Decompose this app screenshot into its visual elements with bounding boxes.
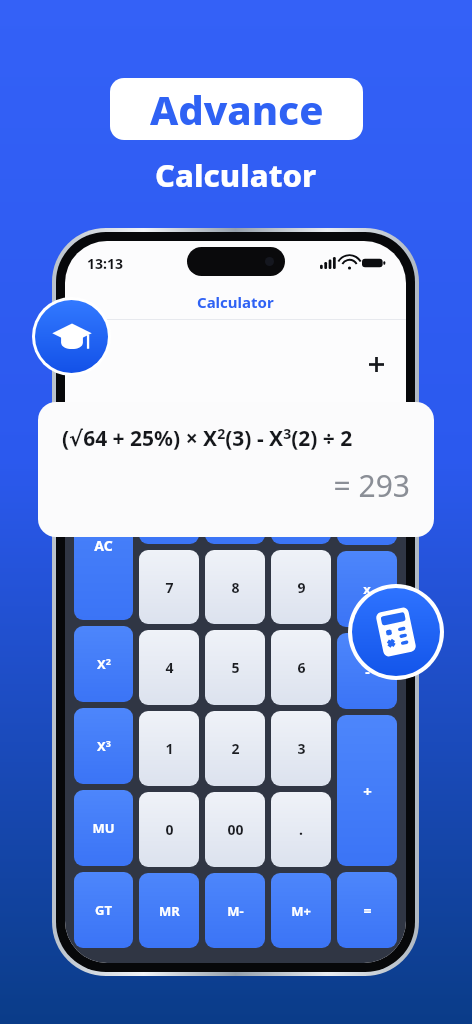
button[interactable]: + xyxy=(337,715,397,866)
button[interactable]: ÷ xyxy=(337,470,397,545)
button[interactable]: . xyxy=(271,792,331,867)
staticText: 2 xyxy=(231,739,240,758)
staticText: Check xyxy=(96,426,130,441)
button[interactable]: MR xyxy=(139,873,199,948)
staticText: 0→00 xyxy=(271,443,294,455)
staticText: . xyxy=(299,820,303,839)
staticText: (√64 + 25%) × X2(3) - X3(2) ÷ 2 xyxy=(62,424,410,453)
button[interactable]: 1 xyxy=(139,711,199,786)
staticText: = xyxy=(363,901,372,920)
staticText: 8 xyxy=(231,578,240,597)
staticText: 13:13 xyxy=(87,254,123,273)
button[interactable]: Education xyxy=(35,300,108,373)
staticText: = 293 xyxy=(62,465,410,506)
staticText: 00 xyxy=(227,820,244,839)
button[interactable]: 2 xyxy=(205,711,265,786)
staticText: 5 xyxy=(231,658,240,677)
button[interactable]: x xyxy=(337,551,397,627)
staticText: Advance xyxy=(150,82,324,136)
staticText: 3 xyxy=(297,739,306,758)
button[interactable]: MU xyxy=(74,790,133,866)
button[interactable]: Square root xyxy=(205,470,265,544)
staticText: + xyxy=(363,781,372,801)
staticText: Calculator xyxy=(197,292,274,312)
button[interactable]: Auto Repeat xyxy=(321,416,397,464)
staticText: 0 xyxy=(165,820,174,839)
staticText: M+ xyxy=(291,902,311,920)
button[interactable]: M- xyxy=(205,873,265,948)
staticText: GT xyxy=(95,901,112,919)
staticText: Auto Repeat xyxy=(340,425,379,455)
staticText: - xyxy=(365,662,370,681)
staticText: x xyxy=(363,580,371,598)
button[interactable]: Advance xyxy=(110,78,363,140)
staticText: 4 xyxy=(165,658,174,677)
button[interactable]: X2 xyxy=(74,626,133,702)
button[interactable]: AC xyxy=(74,470,133,620)
staticText: Check xyxy=(178,426,212,441)
button[interactable]: GT xyxy=(74,872,133,948)
staticText: 6 xyxy=(297,658,306,677)
staticText: MR xyxy=(159,902,180,920)
button[interactable]: 4 xyxy=(139,630,199,705)
button[interactable]: % xyxy=(271,470,331,544)
button[interactable]: 9 xyxy=(271,550,331,624)
button[interactable]: Correct xyxy=(239,416,315,464)
button[interactable]: - xyxy=(337,633,397,709)
button[interactable]: 3 xyxy=(271,711,331,786)
button[interactable]: 00 xyxy=(205,792,265,867)
staticText: M- xyxy=(227,902,244,920)
button[interactable]: Check xyxy=(74,416,151,464)
button[interactable]: +/- xyxy=(139,470,199,544)
button[interactable]: X3 xyxy=(74,708,133,784)
button[interactable]: = xyxy=(337,872,397,948)
button[interactable]: Add xyxy=(362,350,390,378)
button[interactable]: 5 xyxy=(205,630,265,705)
staticText: Calculator xyxy=(155,154,317,196)
button[interactable]: 0 xyxy=(139,792,199,867)
staticText: 7 xyxy=(165,578,174,597)
button[interactable]: Check xyxy=(157,416,233,464)
staticText: MU xyxy=(92,819,115,837)
button[interactable]: 6 xyxy=(271,630,331,705)
staticText: X3 xyxy=(97,737,111,755)
staticText: Correct xyxy=(257,425,298,440)
staticText: X2 xyxy=(97,655,111,673)
staticText: 1 xyxy=(165,739,174,758)
button[interactable]: M+ xyxy=(271,873,331,948)
button[interactable]: 7 xyxy=(139,550,199,624)
button[interactable]: Calculator xyxy=(352,588,440,676)
staticText: 9 xyxy=(297,578,306,597)
button[interactable]: (√64 + 25%) × X2(3) - X3(2) ÷ 2 xyxy=(38,402,434,537)
staticText: AC xyxy=(94,536,113,555)
button[interactable]: 8 xyxy=(205,550,265,624)
